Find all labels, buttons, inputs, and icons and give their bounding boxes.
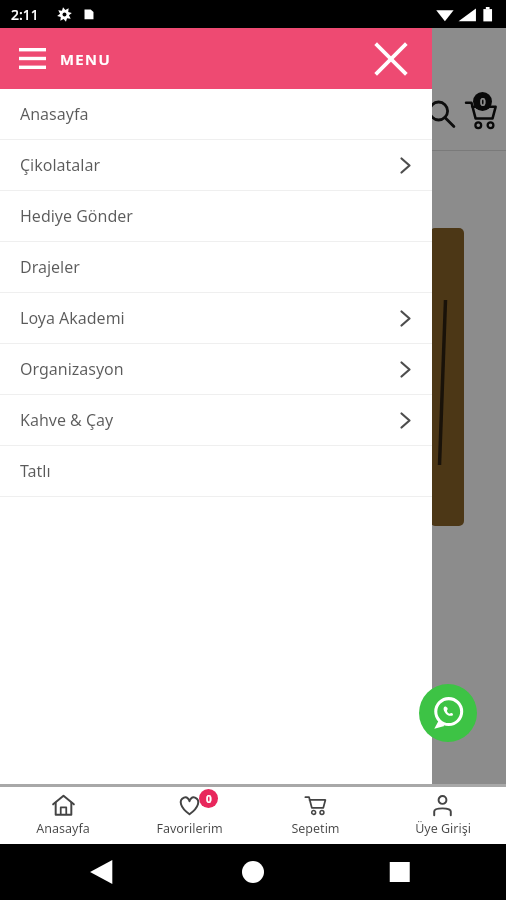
button[interactable]: Organizasyon — [0, 344, 432, 394]
button[interactable]: Üye Girişi — [379, 787, 506, 844]
button[interactable]: Anasayfa — [0, 787, 126, 844]
staticText: 2:11 — [11, 5, 39, 24]
staticText: Drajeler — [20, 256, 80, 278]
other: Cart — [464, 98, 498, 132]
button[interactable]: Kahve & Çay — [0, 395, 432, 445]
other: Search — [426, 99, 456, 129]
staticText: Hediye Gönder — [20, 205, 133, 227]
staticText: Üye Girişi — [415, 820, 471, 837]
staticText: Çikolatalar — [20, 154, 101, 176]
button[interactable]: Close menu — [370, 38, 412, 80]
staticText: Tatlı — [20, 460, 51, 482]
button[interactable]: Loya Akademi — [0, 293, 432, 343]
staticText: MENU — [60, 49, 112, 69]
other: Menu — [19, 48, 46, 69]
staticText: Anasayfa — [36, 820, 90, 837]
staticText: Sepetim — [291, 820, 340, 837]
button[interactable]: Drajeler — [0, 242, 432, 292]
button[interactable]: Menu — [0, 28, 432, 89]
button[interactable]: 0 — [126, 787, 252, 844]
button[interactable]: Çikolatalar — [0, 140, 432, 190]
button[interactable]: WhatsApp — [419, 684, 477, 742]
staticText: 0 — [480, 95, 486, 109]
button[interactable]: Tatlı — [0, 446, 432, 496]
staticText: Favorilerim — [156, 820, 223, 837]
staticText: 0 — [206, 792, 212, 806]
button[interactable]: Hediye Gönder — [0, 191, 432, 241]
staticText: Organizasyon — [20, 358, 124, 380]
button[interactable]: Anasayfa — [0, 89, 432, 139]
staticText: Kahve & Çay — [20, 409, 114, 431]
button[interactable]: Sepetim — [252, 787, 379, 844]
staticText: Anasayfa — [20, 103, 89, 125]
staticText: Loya Akademi — [20, 307, 125, 329]
